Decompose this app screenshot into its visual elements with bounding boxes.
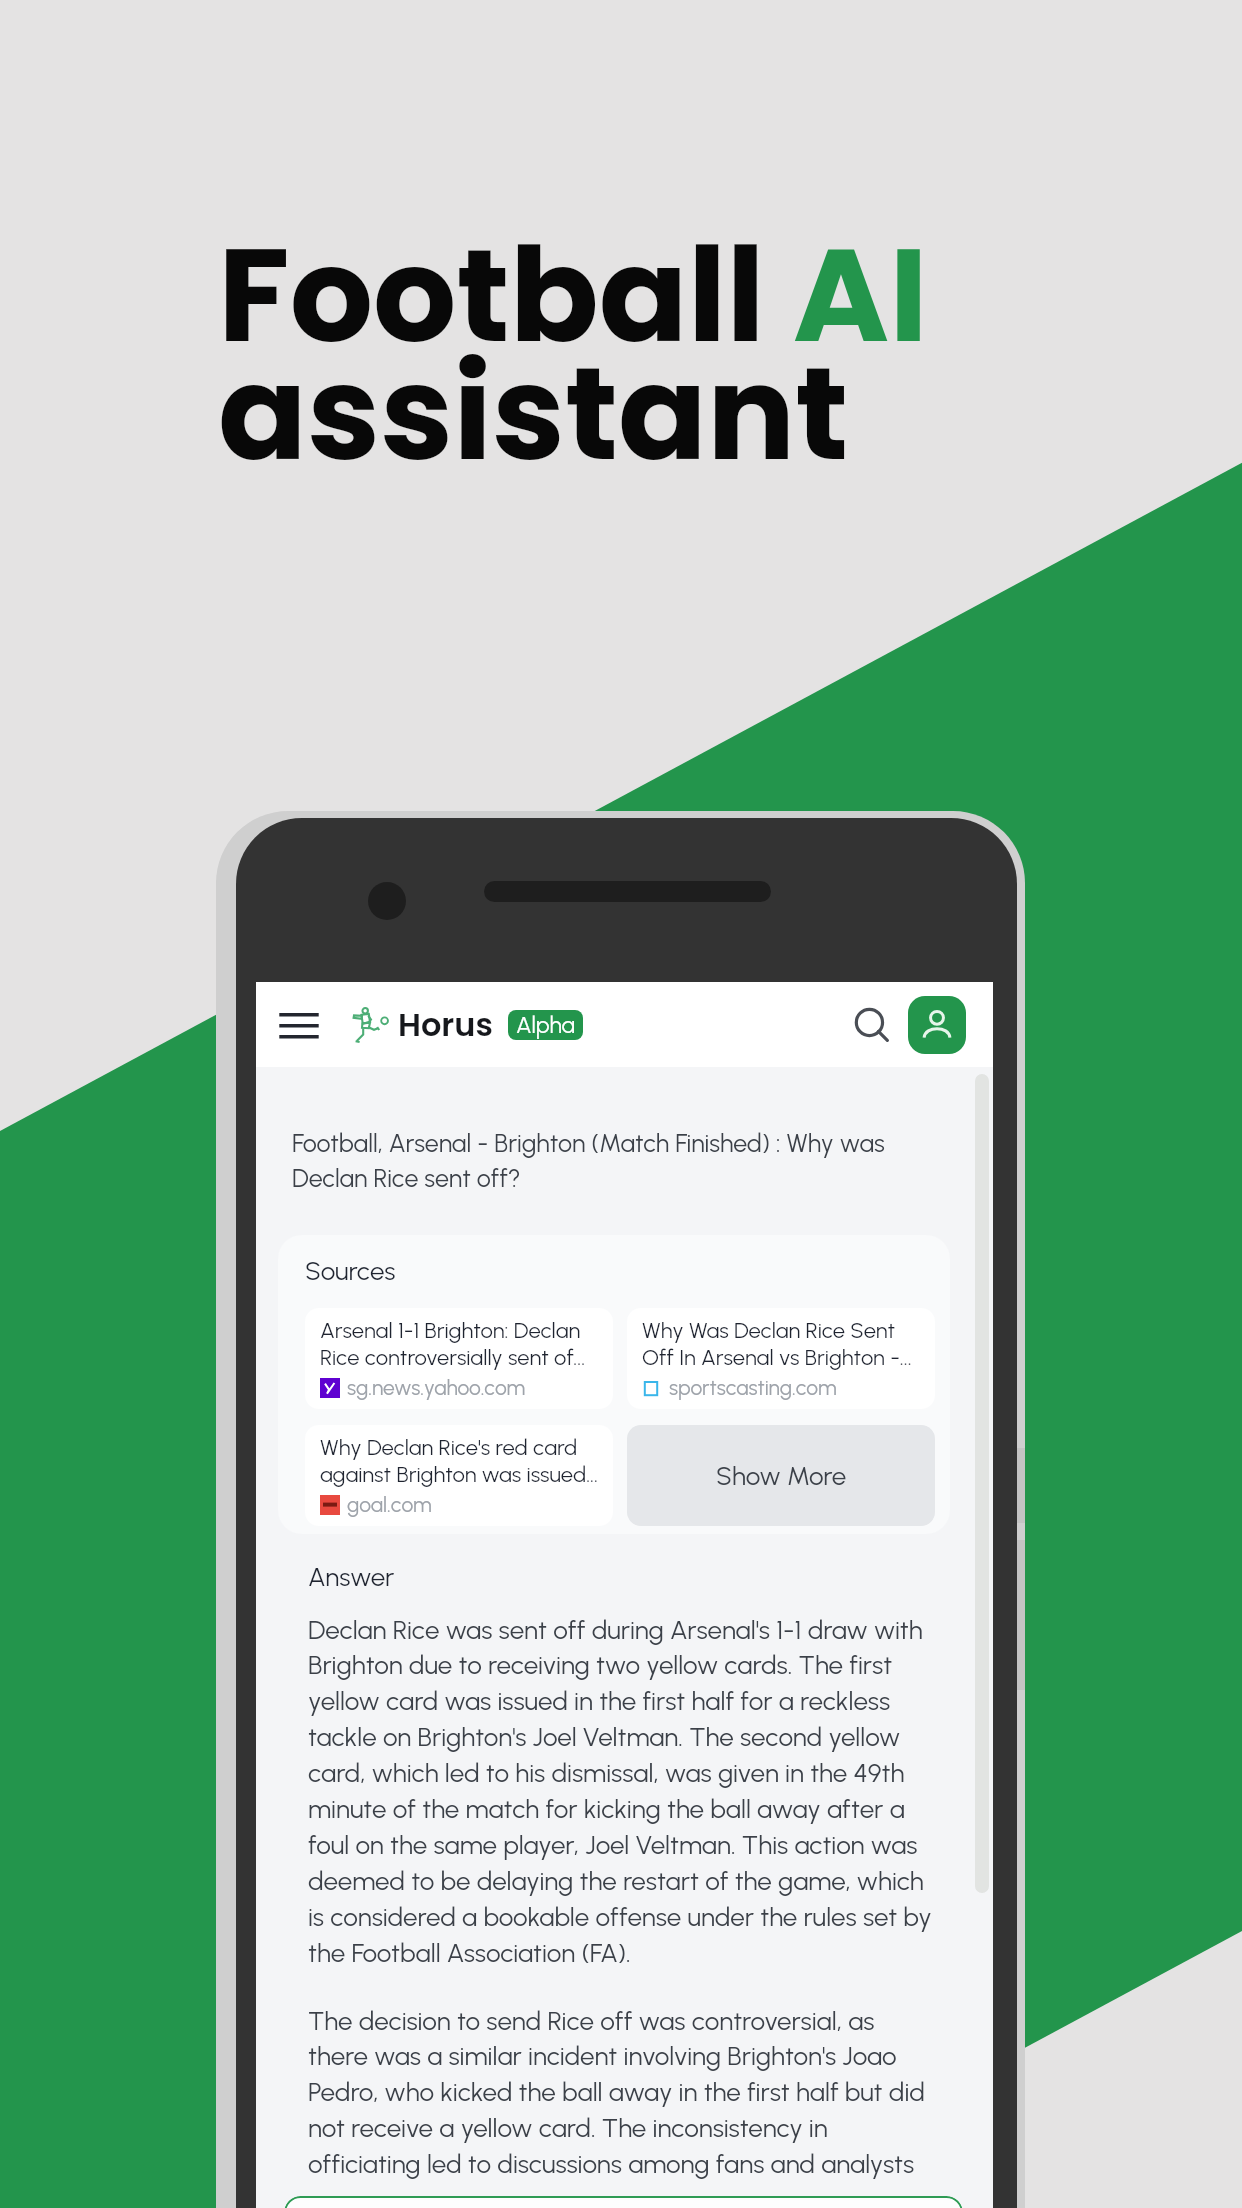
button[interactable]: Arsenal 1-1 Brighton: Declan Rice contro… — [305, 1308, 613, 1409]
button[interactable]: Show More — [627, 1425, 935, 1526]
button[interactable]: Menu — [278, 1003, 320, 1047]
staticText: Sources — [305, 1255, 396, 1286]
button[interactable]: Account — [908, 996, 966, 1054]
button[interactable]: Search — [849, 1002, 895, 1048]
staticText: Football, Arsenal - Brighton (Match Fini… — [292, 1128, 916, 1193]
button[interactable]: Why Was Declan Rice Sent Off In Arsenal … — [627, 1308, 935, 1409]
staticText: sg.news.yahoo.com — [347, 1375, 526, 1400]
staticText: Arsenal 1-1 Brighton: Declan Rice contro… — [320, 1317, 607, 1371]
button[interactable] — [284, 2196, 963, 2208]
staticText: Horus — [398, 1002, 493, 1047]
staticText: Show More — [716, 1460, 847, 1491]
staticText: Alpha — [516, 1011, 575, 1039]
staticText: goal.com — [347, 1492, 432, 1517]
staticText: Why Was Declan Rice Sent Off In Arsenal … — [642, 1317, 929, 1371]
staticText: Why Declan Rice's red card against Brigh… — [320, 1434, 607, 1488]
staticText: sportscasting.com — [669, 1375, 837, 1400]
button[interactable]: Why Declan Rice's red card against Brigh… — [305, 1425, 613, 1526]
staticText: Football AI assistant — [218, 203, 928, 504]
staticText: The decision to send Rice off was contro… — [308, 2005, 940, 2180]
staticText: Answer — [308, 1561, 395, 1592]
staticText: Declan Rice was sent off during Arsenal'… — [308, 1614, 940, 1969]
